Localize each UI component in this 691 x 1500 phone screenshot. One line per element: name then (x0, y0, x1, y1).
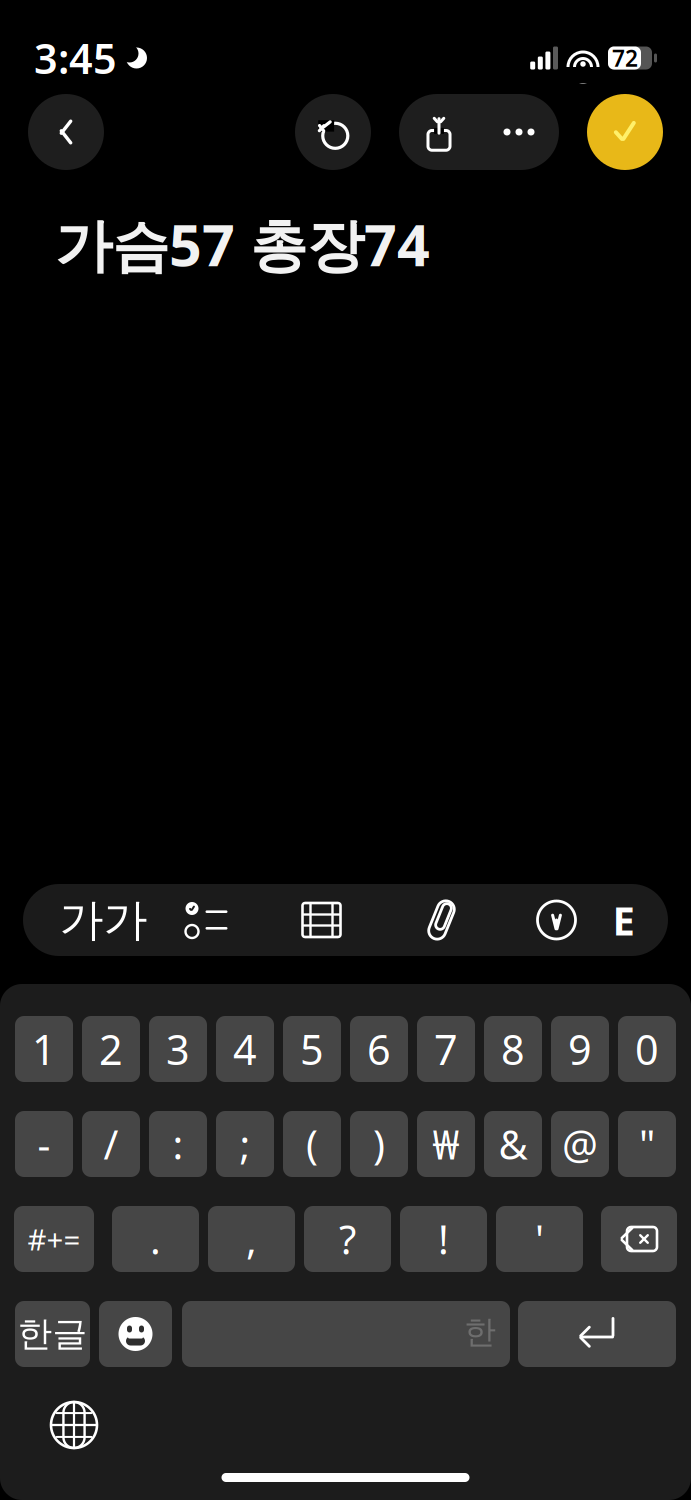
button[interactable]: Checklist (151, 884, 261, 956)
button[interactable]: & (484, 1111, 542, 1177)
button[interactable]: Emoji (99, 1301, 172, 1367)
button[interactable]: 한글 (15, 1301, 90, 1367)
staticText: ' (535, 1212, 544, 1265)
staticText: 한글 (17, 1313, 87, 1355)
staticText: ( (306, 1117, 318, 1170)
button[interactable]: 가가 (55, 884, 151, 956)
button[interactable]: #+= (14, 1206, 94, 1272)
button[interactable]: : (149, 1111, 207, 1177)
button[interactable]: Back (28, 94, 104, 170)
staticText: 72 (612, 43, 638, 73)
button[interactable]: 4 (216, 1016, 274, 1082)
button[interactable]: 8 (484, 1016, 542, 1082)
button[interactable]: 7 (417, 1016, 475, 1082)
button[interactable]: , (208, 1206, 295, 1272)
button[interactable]: ; (216, 1111, 274, 1177)
button[interactable]: ? (304, 1206, 391, 1272)
button[interactable]: 5 (283, 1016, 341, 1082)
staticText: 0 (635, 1022, 659, 1076)
staticText: ) (373, 1117, 385, 1170)
staticText: / (103, 1117, 118, 1170)
button[interactable]: ! (400, 1206, 487, 1272)
button[interactable]: ' (496, 1206, 583, 1272)
button[interactable]: Undo (295, 94, 371, 170)
button[interactable]: Attach (381, 884, 501, 956)
staticText: 5 (300, 1022, 324, 1076)
button[interactable]: Table (261, 884, 381, 956)
button[interactable]: - (15, 1111, 73, 1177)
button[interactable]: / (82, 1111, 140, 1177)
staticText: @ (562, 1117, 598, 1170)
button[interactable]: 3 (149, 1016, 207, 1082)
staticText: E (612, 893, 634, 946)
button[interactable]: 2 (82, 1016, 140, 1082)
staticText: : (172, 1117, 183, 1170)
staticText: 9 (568, 1022, 592, 1076)
button[interactable]: Space (182, 1301, 510, 1367)
staticText: ? (339, 1212, 356, 1265)
staticText: ! (438, 1212, 449, 1265)
staticText: 가가 (59, 893, 147, 947)
button[interactable]: ( (283, 1111, 341, 1177)
staticText: 3 (166, 1022, 190, 1076)
button[interactable]: Delete (601, 1206, 677, 1272)
button[interactable]: " (618, 1111, 676, 1177)
button[interactable]: ₩ (417, 1111, 475, 1177)
staticText: #+= (27, 1219, 80, 1258)
button[interactable]: More formats (611, 884, 635, 956)
staticText: 1 (32, 1022, 56, 1076)
button[interactable]: ) (350, 1111, 408, 1177)
button[interactable]: Markup (501, 884, 611, 956)
staticText: 7 (434, 1022, 458, 1076)
staticText: 8 (501, 1022, 525, 1076)
staticText: , (246, 1212, 257, 1265)
staticText: 2 (99, 1022, 123, 1076)
button[interactable]: . (112, 1206, 199, 1272)
staticText: ₩ (432, 1117, 459, 1170)
button[interactable]: 9 (551, 1016, 609, 1082)
staticText: 한 (464, 1312, 496, 1352)
button[interactable]: 1 (15, 1016, 73, 1082)
button[interactable]: @ (551, 1111, 609, 1177)
button[interactable]: Return (518, 1301, 676, 1367)
staticText: . (150, 1212, 161, 1265)
button[interactable]: Share (399, 94, 479, 170)
staticText: 가슴57 총장74 (55, 206, 430, 282)
button[interactable]: Done (587, 94, 663, 170)
staticText: " (639, 1117, 655, 1170)
button[interactable]: Next keyboard (36, 1387, 112, 1463)
staticText: 4 (233, 1022, 257, 1076)
button[interactable]: More (479, 94, 559, 170)
staticText: 3:45 (34, 31, 117, 85)
button[interactable]: 0 (618, 1016, 676, 1082)
staticText: ; (239, 1117, 250, 1170)
staticText: & (498, 1117, 527, 1170)
staticText: - (37, 1117, 50, 1170)
staticText: 6 (367, 1022, 391, 1076)
button[interactable]: 6 (350, 1016, 408, 1082)
